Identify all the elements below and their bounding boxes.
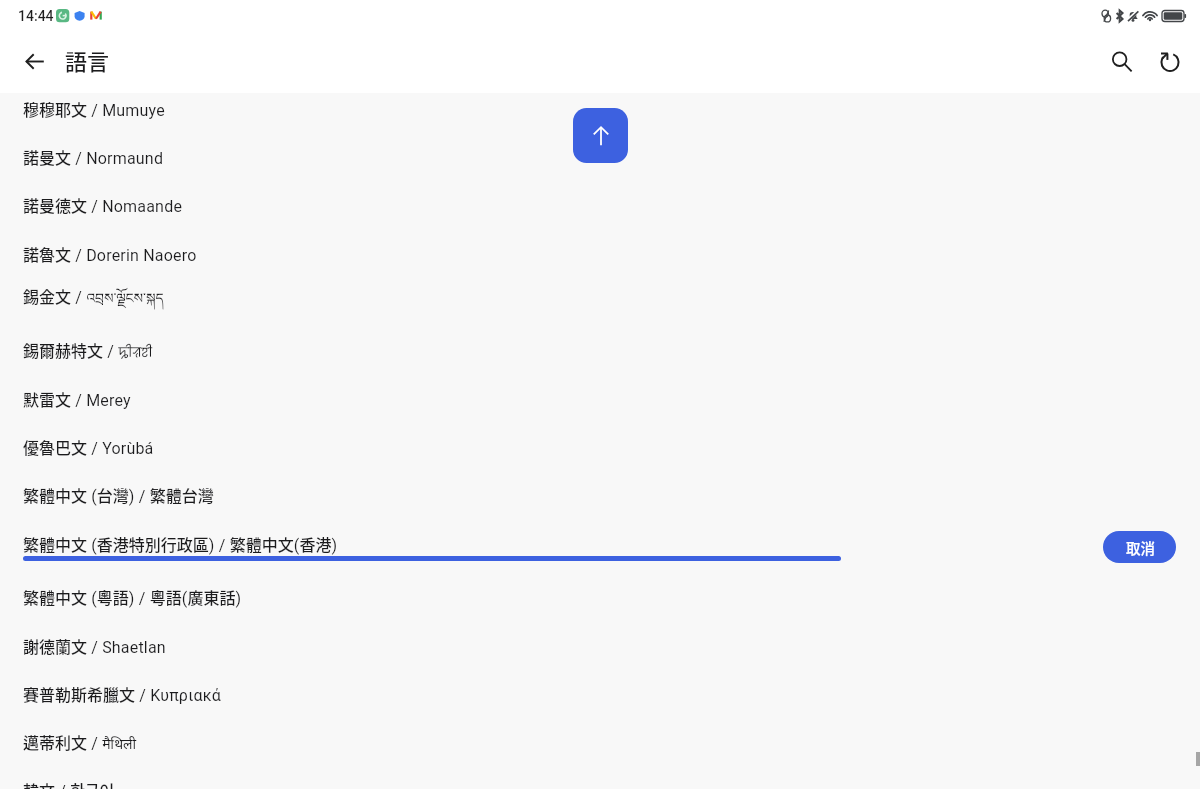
staticText: 默雷文 / Merey	[23, 387, 131, 410]
button[interactable]: 繁體中文 (粵語) / 粵語(廣東話)	[0, 572, 1200, 620]
staticText: 韓文 / 한국어	[23, 778, 115, 789]
button[interactable]: 錫爾赫特文 / ꠍꠤꠟꠐꠤ	[0, 325, 1200, 373]
button[interactable]: 優魯巴文 / Yorùbá	[0, 422, 1200, 470]
button[interactable]: 繁體中文 (香港特別行政區) / 繁體中文(香港)	[0, 519, 1200, 567]
button[interactable]: 取消	[1103, 531, 1176, 563]
button[interactable]: Scroll to top	[573, 108, 628, 163]
button[interactable]: 謝德蘭文 / Shaetlan	[0, 621, 1200, 669]
button[interactable]: Refresh	[1148, 40, 1192, 84]
button[interactable]: 諾曼文 / Normaund	[0, 132, 1200, 180]
staticText: 諾曼文 / Normaund	[23, 145, 164, 168]
button[interactable]: 繁體中文 (台灣) / 繁體台灣	[0, 470, 1200, 518]
button[interactable]: 錫金文 / འབྲས་ལྗོངས་སྐད	[0, 277, 1200, 325]
staticText: 語言	[65, 44, 110, 76]
staticText: 諾曼德文 / Nomaande	[23, 193, 183, 216]
button[interactable]: 默雷文 / Merey	[0, 374, 1200, 422]
button[interactable]: 諾魯文 / Dorerin Naoero	[0, 229, 1200, 277]
staticText: 邁蒂利文 / मैथिली	[23, 730, 137, 753]
button[interactable]: Search	[1099, 39, 1143, 83]
staticText: 14:44	[18, 8, 54, 24]
button[interactable]: 穆穆耶文 / Mumuye	[0, 84, 1200, 132]
staticText: 繁體中文 (台灣) / 繁體台灣	[23, 483, 214, 506]
staticText: 取消	[1126, 537, 1155, 558]
staticText: 穆穆耶文 / Mumuye	[23, 97, 165, 120]
button[interactable]: Back	[13, 40, 57, 84]
staticText: 繁體中文 (香港特別行政區) / 繁體中文(香港)	[23, 532, 338, 555]
staticText: 繁體中文 (粵語) / 粵語(廣東話)	[23, 585, 242, 608]
staticText: 錫爾赫特文 / ꠍꠤꠟꠐꠤ	[23, 338, 153, 361]
button[interactable]: 邁蒂利文 / मैथिली	[0, 717, 1200, 765]
button[interactable]: 賽普勒斯希臘文 / Κυπριακά	[0, 669, 1200, 717]
staticText: 優魯巴文 / Yorùbá	[23, 435, 154, 458]
staticText: 諾魯文 / Dorerin Naoero	[23, 242, 197, 265]
staticText: 謝德蘭文 / Shaetlan	[23, 634, 166, 657]
staticText: 賽普勒斯希臘文 / Κυπριακά	[23, 682, 222, 705]
button[interactable]: 韓文 / 한국어	[0, 765, 1200, 789]
staticText: 錫金文 / འབྲས་ལྗོངས་སྐད	[23, 282, 164, 321]
button[interactable]: 諾曼德文 / Nomaande	[0, 180, 1200, 228]
